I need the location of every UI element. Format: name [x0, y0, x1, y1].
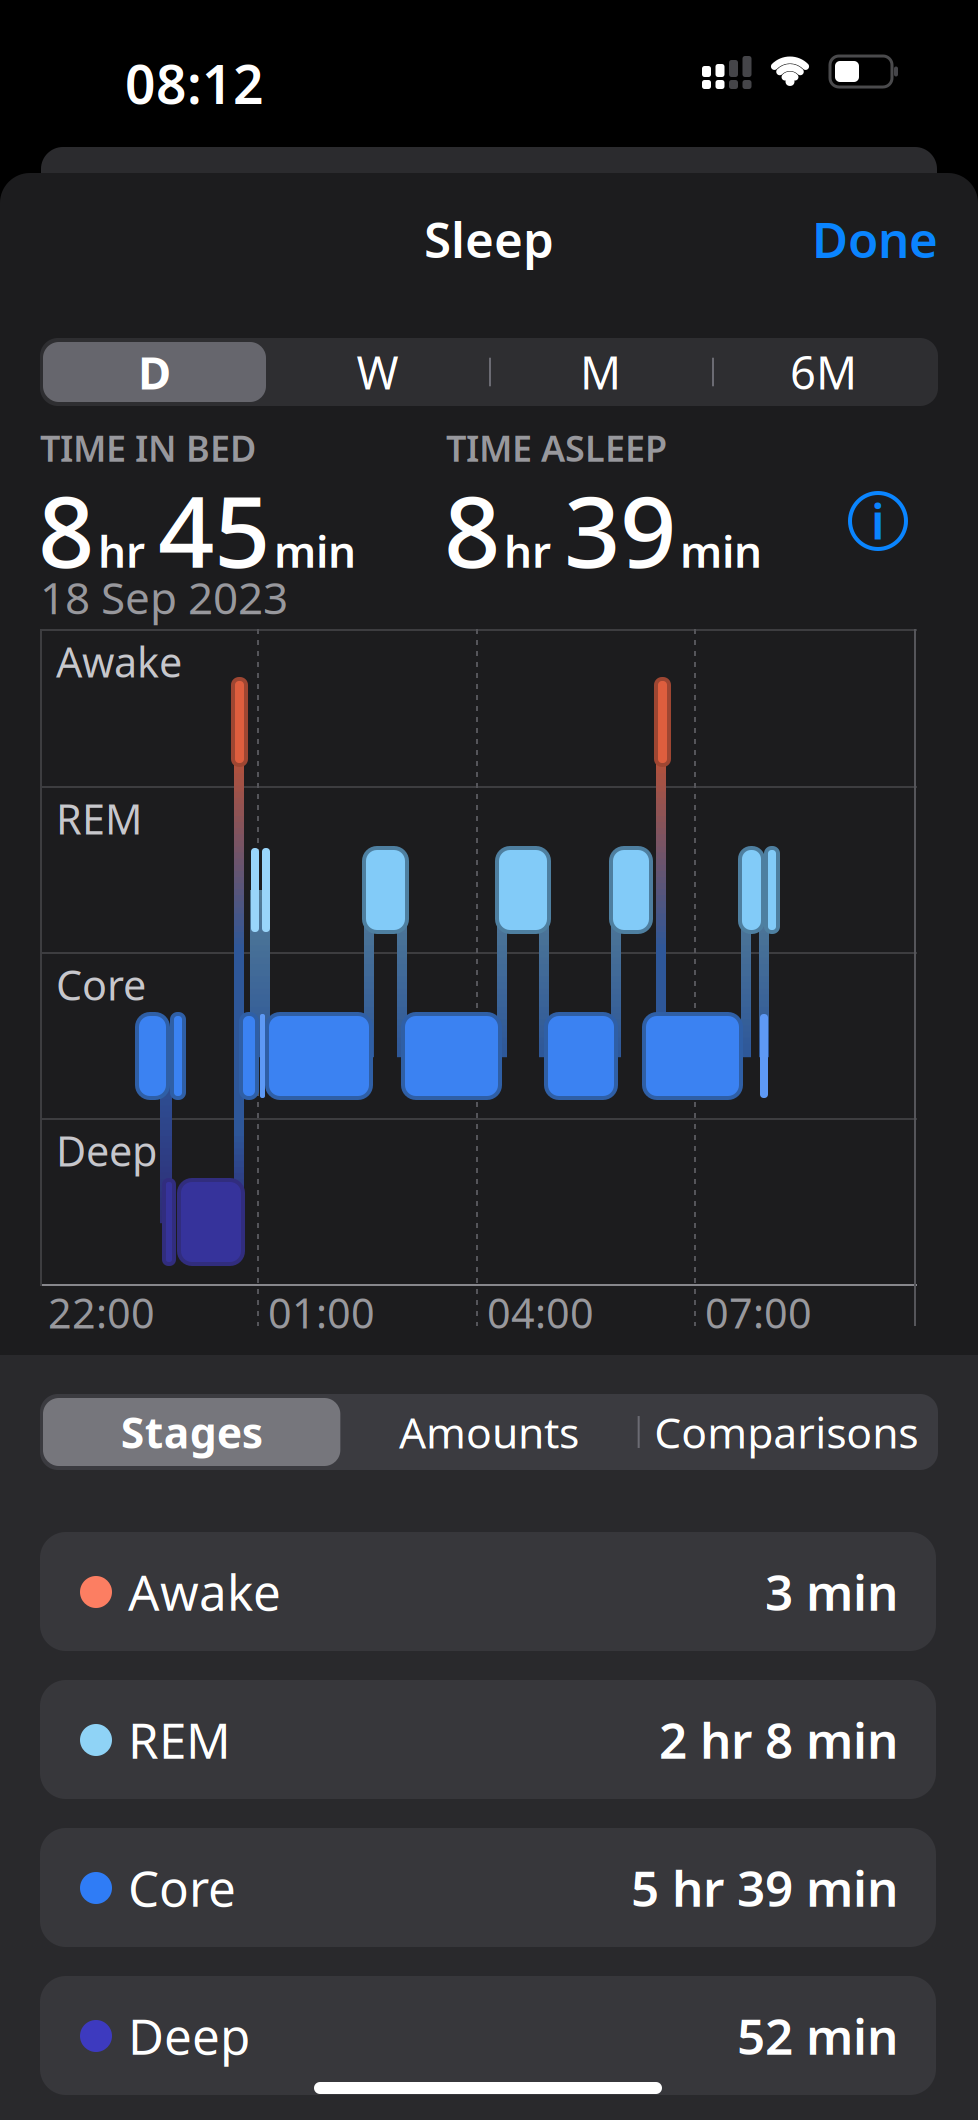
staticText: 8	[38, 464, 94, 595]
button[interactable]: W	[266, 338, 489, 406]
staticText: Core	[128, 1855, 236, 1920]
button[interactable]: Stages	[43, 1394, 340, 1470]
staticText: 04:00	[487, 1285, 594, 1340]
button[interactable]: Amounts	[340, 1394, 638, 1470]
staticText: REM	[56, 791, 142, 846]
staticText: 8	[444, 464, 500, 595]
button[interactable]: M	[489, 338, 712, 406]
button[interactable]: D	[43, 338, 266, 406]
staticText: Deep	[128, 2003, 250, 2068]
staticText: 52 min	[737, 2003, 898, 2068]
staticText: 6M	[790, 342, 857, 402]
staticText: 39	[564, 464, 676, 595]
staticText: 2 hr 8 min	[659, 1707, 898, 1772]
staticText: Amounts	[399, 1404, 579, 1460]
button[interactable]: Comparisons	[638, 1394, 935, 1470]
staticText: M	[580, 342, 621, 402]
staticText: Done	[812, 206, 938, 271]
staticText: D	[138, 342, 171, 402]
staticText: 01:00	[268, 1285, 375, 1340]
button[interactable]: Done	[812, 206, 938, 271]
staticText: TIME ASLEEP	[446, 424, 667, 472]
staticText: 18 Sep 2023	[40, 568, 288, 626]
staticText: Comparisons	[654, 1404, 918, 1460]
staticText: 3 min	[765, 1559, 898, 1624]
staticText: Core	[56, 957, 146, 1012]
staticText: i	[871, 489, 885, 553]
staticText: 08:12	[125, 48, 264, 119]
staticText: Sleep	[424, 206, 554, 271]
staticText: W	[356, 342, 398, 402]
staticText: 45	[158, 464, 270, 595]
staticText: TIME IN BED	[40, 424, 256, 472]
staticText: 22:00	[48, 1285, 155, 1340]
staticText: Awake	[128, 1559, 281, 1624]
staticText: 5 hr 39 min	[631, 1855, 898, 1920]
staticText: hr	[98, 521, 145, 580]
staticText: Stages	[121, 1404, 263, 1460]
staticText: REM	[128, 1707, 231, 1772]
staticText: Deep	[56, 1123, 157, 1178]
staticText: Awake	[56, 634, 182, 689]
staticText: 07:00	[705, 1285, 812, 1340]
staticText: hr	[504, 521, 551, 580]
button[interactable]: About sleep stages	[850, 493, 906, 549]
staticText: min	[680, 521, 762, 580]
staticText: min	[274, 521, 356, 580]
button[interactable]: 6M	[712, 338, 935, 406]
